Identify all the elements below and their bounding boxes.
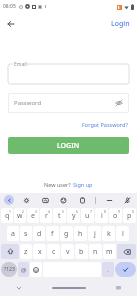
button[interactable]: Emoji	[30, 262, 42, 277]
button[interactable]: y	[67, 208, 80, 223]
button[interactable]: c	[47, 244, 60, 259]
staticText: 2	[22, 209, 25, 214]
button[interactable]: .	[102, 262, 114, 277]
staticText: x	[38, 247, 42, 257]
staticText: i	[101, 211, 103, 221]
button[interactable]: h	[74, 226, 87, 241]
button[interactable]: @	[18, 262, 29, 277]
button[interactable]: j	[88, 226, 101, 241]
button[interactable]: Back	[3, 16, 19, 32]
button[interactable]: GIF	[40, 195, 51, 206]
button[interactable]: ?123	[1, 262, 17, 277]
staticText: g	[64, 229, 69, 239]
button[interactable]: s	[20, 226, 32, 241]
staticText: l	[122, 229, 124, 239]
staticText: Login	[111, 19, 130, 29]
staticText: .	[107, 266, 109, 274]
button[interactable]: Password	[8, 93, 129, 113]
button[interactable]: o	[109, 208, 122, 223]
button[interactable]: a	[7, 226, 19, 241]
staticText: w	[17, 211, 23, 221]
staticText: m	[106, 247, 113, 257]
staticText: 8	[104, 209, 107, 214]
button[interactable]: f	[46, 226, 59, 241]
button[interactable]: r	[40, 208, 52, 223]
button[interactable]: Backspace	[117, 244, 136, 259]
button[interactable]: Settings	[21, 195, 32, 206]
staticText: n	[93, 247, 98, 257]
button[interactable]: Enter	[115, 262, 136, 277]
staticText: 5	[62, 209, 65, 214]
staticText: z	[24, 247, 28, 257]
staticText: k	[107, 229, 111, 239]
staticText: t	[58, 211, 61, 221]
button[interactable]: d	[33, 226, 45, 241]
button[interactable]: i	[95, 208, 108, 223]
button[interactable]: k	[102, 226, 115, 241]
button[interactable]: Clipboard	[77, 195, 88, 206]
staticText: j	[94, 229, 96, 239]
staticText: 0	[132, 209, 135, 214]
button[interactable]: v	[61, 244, 74, 259]
staticText: f	[51, 229, 54, 239]
staticText: o	[113, 211, 118, 221]
staticText: 7	[90, 209, 93, 214]
staticText: h	[78, 229, 83, 239]
button[interactable]: p	[123, 208, 136, 223]
button[interactable]: Stickers	[58, 195, 69, 206]
button[interactable]: e	[27, 208, 39, 223]
button[interactable]: Expand	[4, 195, 14, 205]
staticText: Sign up	[73, 181, 93, 188]
staticText: 1	[9, 209, 12, 214]
staticText: 6	[76, 209, 79, 214]
staticText: 3	[35, 209, 38, 214]
button[interactable]: n	[89, 244, 102, 259]
staticText: v	[66, 247, 70, 257]
staticText: Email	[14, 61, 27, 68]
button[interactable]: b	[75, 244, 88, 259]
button[interactable]: More	[104, 195, 115, 206]
staticText: b	[79, 247, 84, 257]
button[interactable]: z	[20, 244, 32, 259]
staticText: y	[72, 211, 76, 221]
staticText: ?123	[4, 266, 15, 273]
button[interactable]: Login	[109, 18, 132, 30]
button[interactable]: w	[14, 208, 26, 223]
staticText: q	[5, 211, 10, 221]
staticText: 9	[118, 209, 121, 214]
button[interactable]: m	[103, 244, 116, 259]
button[interactable]: Hide keyboard	[14, 283, 24, 293]
button[interactable]: Show password	[113, 97, 125, 109]
staticText: a	[11, 229, 15, 239]
staticText: s	[24, 229, 28, 239]
button[interactable]: Forgot Password?	[81, 120, 129, 129]
button[interactable]: LOGIN	[8, 137, 129, 154]
button[interactable]: q	[1, 208, 13, 223]
button[interactable]: l	[116, 226, 129, 241]
button[interactable]: x	[33, 244, 46, 259]
staticText: Password	[14, 99, 42, 107]
staticText: Forgot Password?	[82, 121, 128, 128]
staticText: @	[21, 266, 27, 274]
button[interactable]	[8, 60, 129, 84]
staticText: p	[127, 211, 132, 221]
button[interactable]: t	[53, 208, 66, 223]
button[interactable]: Voice off	[122, 195, 133, 206]
staticText: 4	[48, 209, 51, 214]
staticText: r	[45, 211, 48, 221]
staticText: u	[85, 211, 90, 221]
staticText: c	[52, 247, 56, 257]
button[interactable]: Shift	[1, 244, 19, 259]
button[interactable]: Sign up	[73, 181, 93, 188]
staticText: d	[37, 229, 42, 239]
button[interactable]: u	[81, 208, 94, 223]
staticText: e	[31, 211, 35, 221]
staticText: LOGIN	[57, 141, 80, 151]
staticText: 08:05	[3, 3, 16, 10]
button[interactable]: g	[60, 226, 73, 241]
staticText: New user?	[44, 181, 73, 188]
button[interactable]: Recent apps	[113, 283, 123, 293]
